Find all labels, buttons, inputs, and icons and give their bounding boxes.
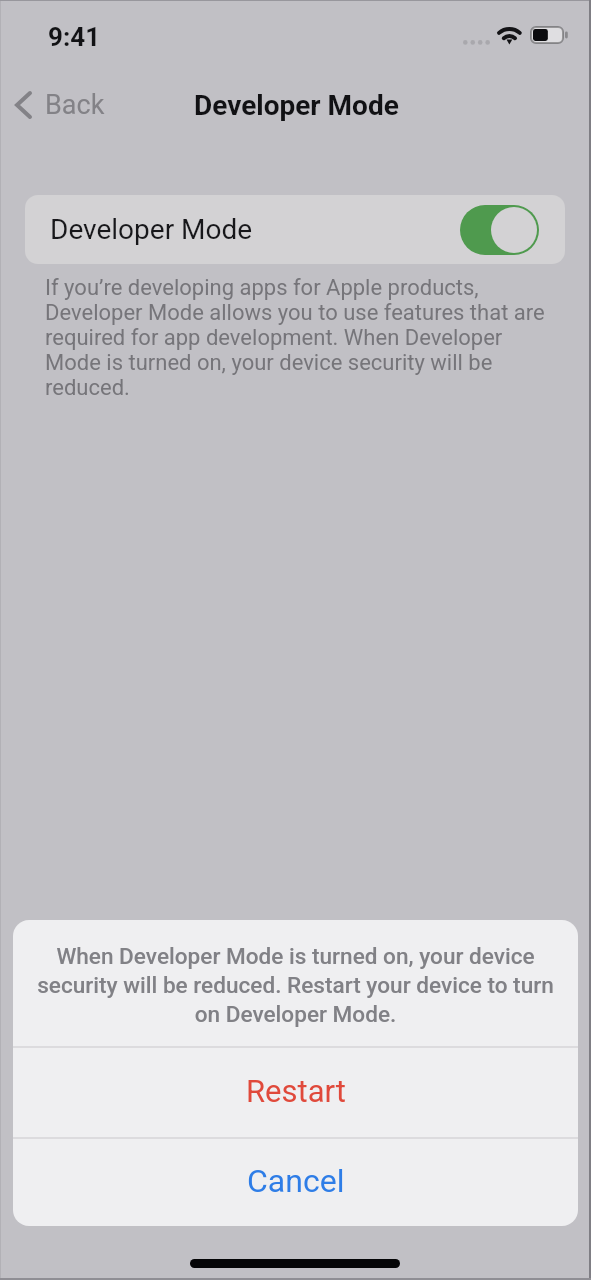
staticText: When Developer Mode is turned on, your d… [27,943,564,1027]
other: Battery [530,26,569,45]
staticText: Developer Mode [194,89,399,122]
button[interactable]: Restart [13,1048,578,1137]
staticText: Back [45,89,105,121]
button[interactable]: Developer Mode toggle [460,205,539,255]
other: Wi-Fi [496,25,524,47]
staticText: 9:41 [48,22,101,52]
staticText: Developer Mode [50,213,253,246]
button[interactable]: Cancel [13,1139,578,1226]
staticText: If you’re developing apps for Apple prod… [45,275,557,401]
other: Cellular signal [462,38,492,47]
staticText: Restart [246,1073,346,1109]
button[interactable]: Back [5,74,117,136]
staticText: Cancel [247,1162,345,1200]
button[interactable]: Developer Mode [25,195,565,264]
